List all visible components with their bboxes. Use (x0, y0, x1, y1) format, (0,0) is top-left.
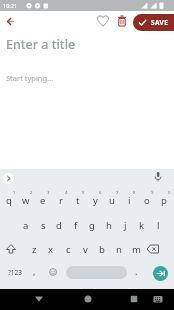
button[interactable]: u (103, 193, 121, 207)
staticText: 10:21 (3, 2, 18, 9)
staticText: m (132, 243, 141, 256)
button[interactable]: g (83, 218, 101, 232)
staticText: d (56, 219, 62, 232)
staticText: y (93, 194, 98, 207)
staticText: 6 (99, 190, 102, 196)
button[interactable] (114, 13, 130, 29)
button[interactable]: 0 (160, 186, 174, 200)
staticText: 1 (13, 190, 16, 196)
button[interactable]: 3 (39, 186, 57, 200)
staticText: . (135, 265, 138, 277)
staticText: 8 (133, 190, 136, 196)
button[interactable]: . (127, 264, 145, 278)
staticText: k (139, 219, 145, 232)
staticText: g (89, 219, 95, 232)
staticText: t (76, 194, 80, 207)
button[interactable]: 6 (91, 186, 109, 200)
button[interactable]: n (110, 242, 128, 256)
staticText: 0 (168, 190, 171, 196)
staticText: 5 (82, 190, 85, 196)
staticText: 7 (116, 190, 119, 196)
staticText: SAVE (151, 18, 169, 27)
staticText: n (116, 243, 122, 256)
staticText: e (40, 194, 46, 207)
button[interactable]: a (17, 218, 35, 232)
button[interactable]: h (100, 218, 118, 232)
button[interactable]: 9 (143, 186, 161, 200)
button[interactable] (3, 14, 18, 29)
staticText: h (106, 219, 112, 232)
button[interactable]: p (155, 193, 173, 207)
button[interactable]: f (67, 218, 85, 232)
button[interactable]: b (93, 242, 111, 256)
button[interactable]: x (42, 242, 60, 256)
button[interactable]: 8 (125, 186, 143, 200)
button[interactable]: i (120, 193, 138, 207)
staticText: x (48, 243, 54, 256)
staticText: 2 (30, 190, 33, 196)
staticText: p (161, 194, 167, 207)
button[interactable] (3, 173, 14, 184)
button[interactable]: j (116, 218, 134, 232)
button[interactable]: k (133, 218, 151, 232)
button[interactable] (145, 242, 161, 256)
button[interactable] (153, 266, 168, 281)
button[interactable]: r (52, 193, 70, 207)
staticText: w (22, 194, 30, 207)
staticText: l (157, 219, 160, 232)
button[interactable]: 5 (74, 186, 92, 200)
button[interactable] (127, 292, 141, 306)
button[interactable]: q (0, 193, 18, 207)
staticText: a (23, 219, 29, 232)
button[interactable] (66, 266, 127, 279)
staticText: j (124, 219, 127, 232)
staticText: , (33, 265, 36, 277)
button[interactable]: v (76, 242, 94, 256)
staticText: v (83, 243, 88, 256)
button[interactable]: m (127, 242, 145, 256)
button[interactable]: c (59, 242, 77, 256)
staticText: ?123 (8, 268, 22, 277)
staticText: Enter a title (6, 36, 76, 53)
staticText: 4 (65, 190, 68, 196)
staticText: c (66, 243, 71, 256)
staticText: u (109, 194, 115, 207)
button[interactable]: e (34, 193, 52, 207)
button[interactable]: o (138, 193, 156, 207)
button[interactable]: ?123 (6, 265, 24, 279)
staticText: 3 (47, 190, 50, 196)
button[interactable]: d (50, 218, 68, 232)
button[interactable] (151, 292, 165, 306)
button[interactable]: 7 (108, 186, 126, 200)
button[interactable] (81, 292, 95, 306)
staticText: 9 (151, 190, 154, 196)
staticText: q (6, 194, 12, 207)
staticText: r (59, 194, 63, 207)
button[interactable] (32, 292, 46, 306)
button[interactable]: SAVE (133, 14, 174, 31)
button[interactable] (95, 13, 111, 29)
staticText: i (128, 194, 131, 207)
staticText: s (41, 219, 46, 232)
button[interactable]: 2 (22, 186, 40, 200)
button[interactable]: w (17, 193, 35, 207)
button[interactable]: s (34, 218, 52, 232)
staticText: z (32, 243, 37, 256)
button[interactable]: l (149, 218, 167, 232)
staticText: b (99, 243, 105, 256)
button[interactable]: y (86, 193, 104, 207)
button[interactable]: z (25, 242, 43, 256)
staticText: f (74, 219, 78, 232)
button[interactable]: 1 (5, 186, 23, 200)
button[interactable] (3, 242, 19, 256)
button[interactable]: 4 (57, 186, 75, 200)
staticText: Start typing... (6, 73, 54, 83)
staticText: o (144, 194, 150, 207)
button[interactable]: t (69, 193, 87, 207)
button[interactable]: , (25, 264, 43, 278)
